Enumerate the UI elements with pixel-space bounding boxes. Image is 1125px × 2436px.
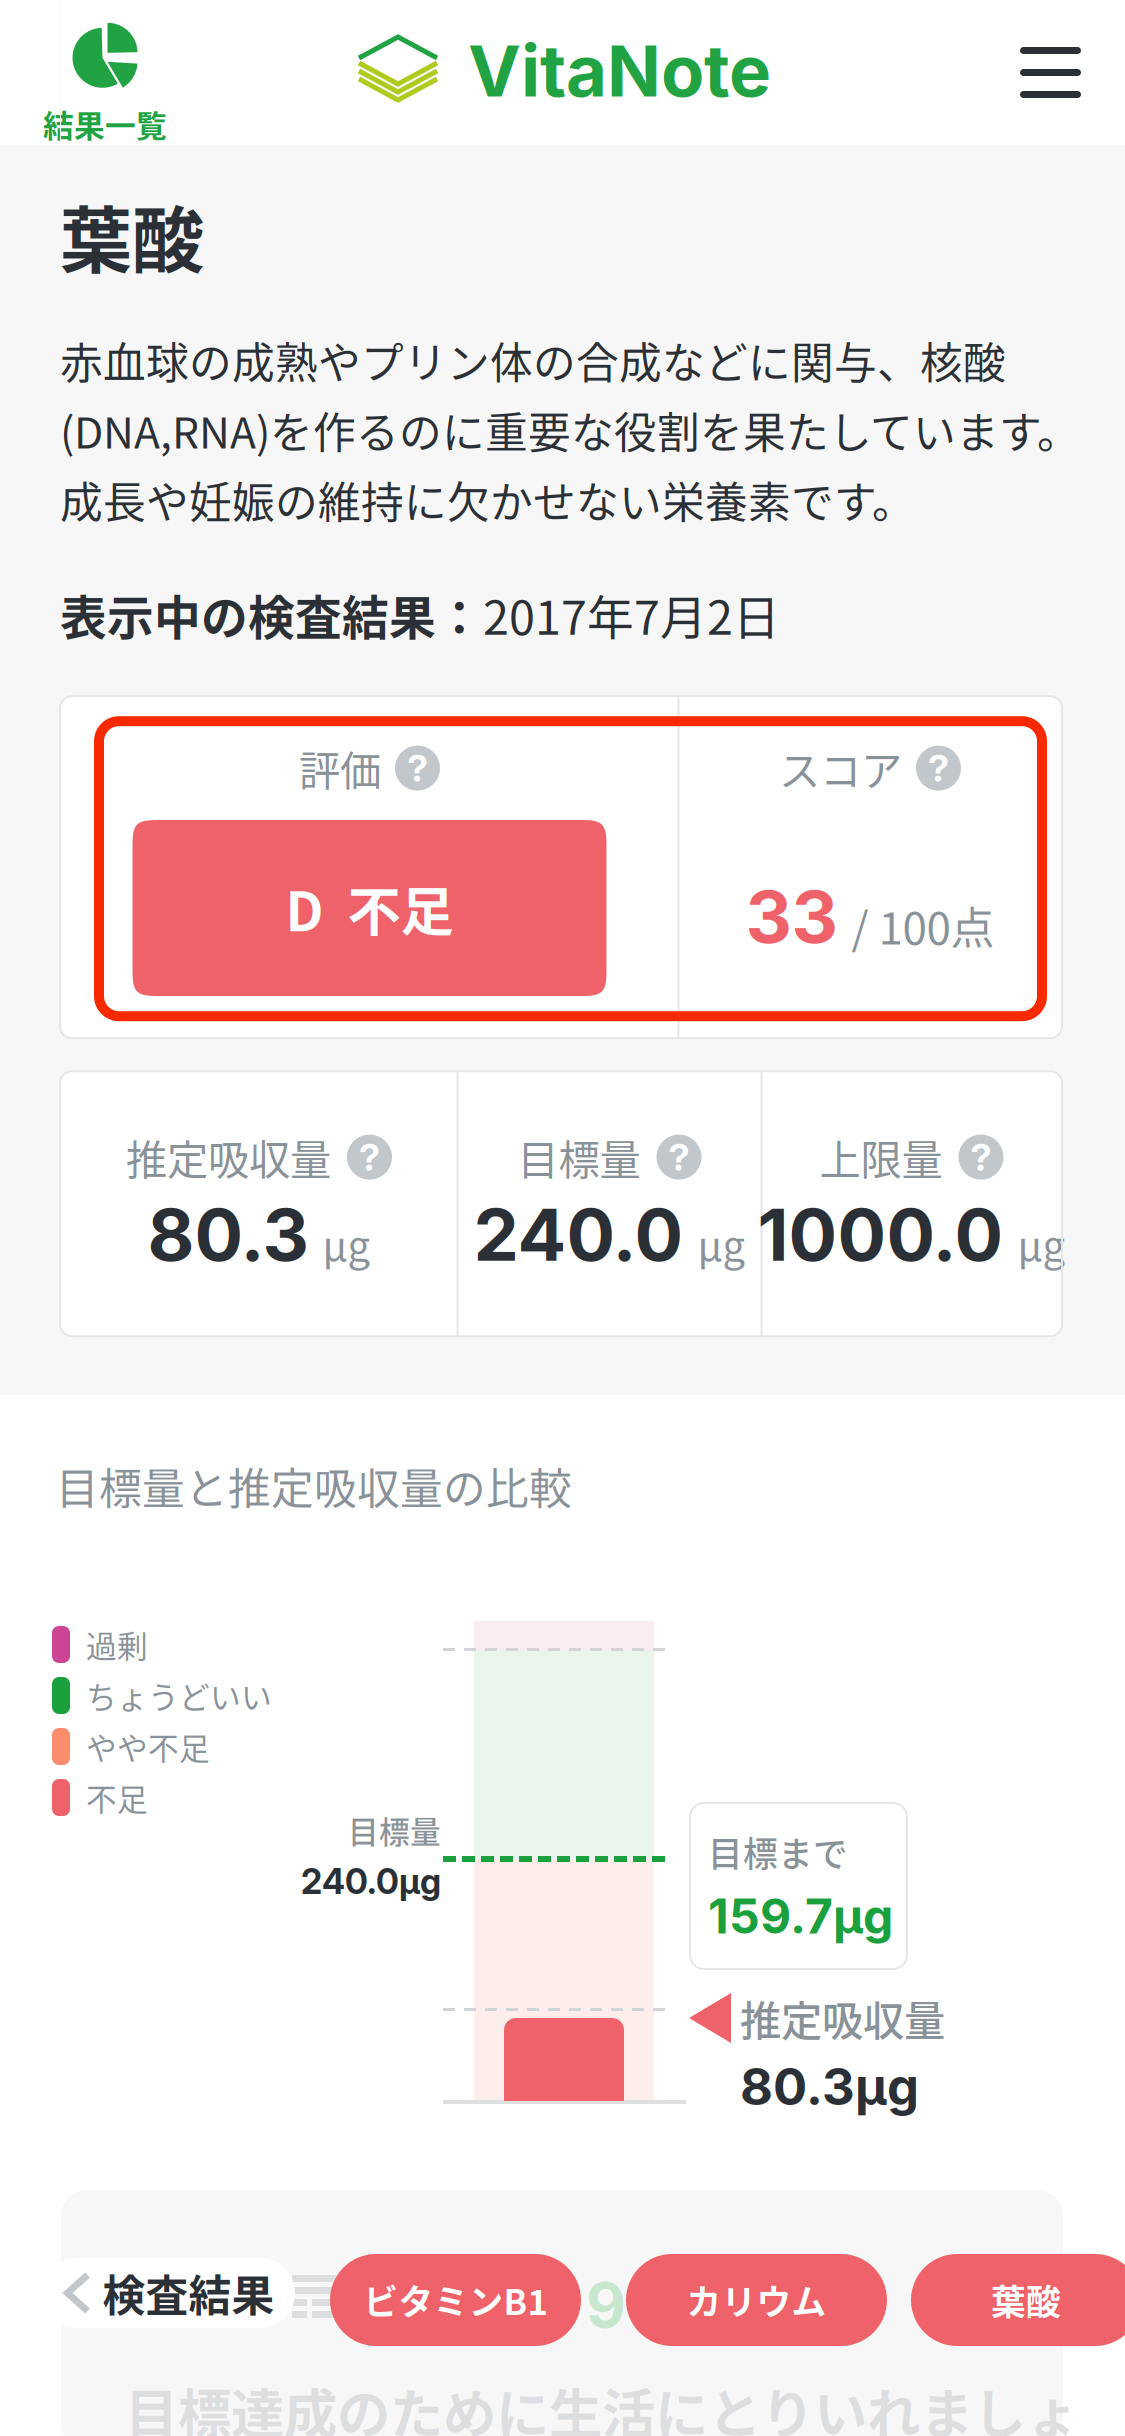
staticText: µg bbox=[322, 1214, 370, 1272]
staticText: 推定吸収量 bbox=[126, 1127, 331, 1187]
staticText: / 100点 bbox=[851, 893, 994, 957]
staticText: 目標量 bbox=[517, 1127, 640, 1187]
staticText: カリウム bbox=[686, 2275, 826, 2325]
staticText: 目標量 bbox=[348, 1808, 441, 1852]
staticText: 推定吸収量 bbox=[740, 1988, 945, 2048]
staticText: 検査結果 bbox=[102, 2262, 274, 2324]
staticText: ? bbox=[407, 745, 428, 791]
staticText: 目標まで bbox=[708, 1827, 848, 1877]
staticText: 2017年7月2日 bbox=[483, 581, 780, 648]
staticText: 上限量 bbox=[819, 1127, 942, 1187]
staticText: VitaNote bbox=[468, 28, 771, 113]
staticText: µg bbox=[697, 1214, 745, 1272]
staticText: (DNA,RNA)を作るのに重要な役割を果たしています。 bbox=[60, 399, 1080, 461]
staticText: 赤血球の成熟やプリン体の合成などに関与、核酸 bbox=[60, 329, 1006, 391]
staticText: やや不足 bbox=[86, 1724, 210, 1769]
button[interactable]: カリウム bbox=[626, 2254, 887, 2346]
staticText: 33 bbox=[745, 873, 837, 960]
button[interactable]: Menu bbox=[978, 0, 1123, 145]
staticText: 80.3µg bbox=[740, 2056, 919, 2117]
button[interactable]: ビタミンB1 bbox=[330, 2254, 581, 2346]
staticText: 240.0 bbox=[473, 1191, 683, 1278]
staticText: 1000.0 bbox=[757, 1191, 1003, 1278]
button[interactable]: 結果一覧 bbox=[0, 0, 210, 145]
staticText: 目標量と推定吸収量の比較 bbox=[56, 1455, 572, 1517]
staticText: ? bbox=[668, 1134, 689, 1180]
staticText: ? bbox=[928, 745, 949, 791]
button[interactable]: 葉酸 bbox=[911, 2254, 1125, 2346]
staticText: 結果一覧 bbox=[43, 102, 167, 146]
button[interactable]: 検査結果 bbox=[42, 2258, 295, 2328]
staticText: ? bbox=[970, 1134, 991, 1180]
staticText: ビタミンB1 bbox=[363, 2275, 547, 2325]
staticText: 目標達成のために生活にとりいれましょ bbox=[125, 2372, 1079, 2436]
staticText: 葉酸 bbox=[991, 2275, 1061, 2325]
staticText: 成長や妊娠の維持に欠かせない栄養素です。 bbox=[60, 469, 915, 531]
staticText: 不足 bbox=[86, 1775, 148, 1820]
staticText: 240.0µg bbox=[301, 1860, 441, 1902]
staticText: 葉酸 bbox=[60, 183, 204, 287]
staticText: 9 bbox=[586, 2268, 626, 2342]
staticText: 表示中の検査結果： bbox=[60, 581, 483, 648]
staticText: µg bbox=[1017, 1214, 1065, 1272]
staticText: 評価 bbox=[299, 738, 381, 798]
staticText: ? bbox=[359, 1134, 380, 1180]
staticText: ちょうどいい bbox=[86, 1673, 272, 1718]
staticText: D 不足 bbox=[285, 869, 453, 947]
staticText: 過剰 bbox=[86, 1622, 148, 1667]
staticText: スコア bbox=[779, 738, 902, 798]
staticText: 80.3 bbox=[147, 1191, 308, 1278]
staticText: 159.7µg bbox=[708, 1887, 893, 1945]
